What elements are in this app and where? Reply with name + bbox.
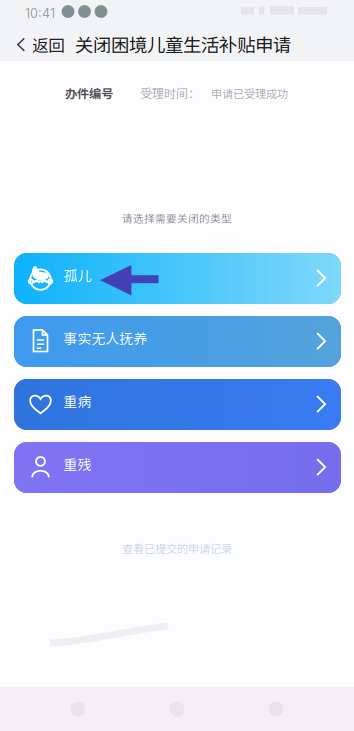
button[interactable]: 重残 — [14, 442, 341, 493]
staticText: 查看已提交的申请记录 — [122, 540, 232, 556]
staticText: 重病 — [64, 391, 92, 411]
button[interactable]: 孤儿 — [14, 253, 341, 304]
staticText: 重残 — [64, 454, 92, 474]
staticText: 关闭困境儿童生活补贴申请 — [75, 31, 291, 57]
button[interactable]: 事实无人抚养 — [14, 316, 341, 367]
button[interactable]: 重病 — [14, 379, 341, 430]
staticText: 受理时间： — [140, 84, 200, 102]
staticText: 返回 — [32, 33, 64, 56]
button[interactable]: 查看已提交的申请记录 — [0, 537, 354, 559]
staticText: 事实无人抚养 — [64, 328, 148, 348]
button[interactable]: 返回 — [8, 24, 66, 61]
staticText: 10:41 — [25, 6, 55, 21]
staticText: 办件编号 — [65, 84, 113, 102]
staticText: 请选择需要关闭的类型 — [122, 210, 232, 226]
staticText: 孤儿 — [64, 265, 92, 285]
staticText: 申请已受理成功 — [211, 85, 288, 101]
